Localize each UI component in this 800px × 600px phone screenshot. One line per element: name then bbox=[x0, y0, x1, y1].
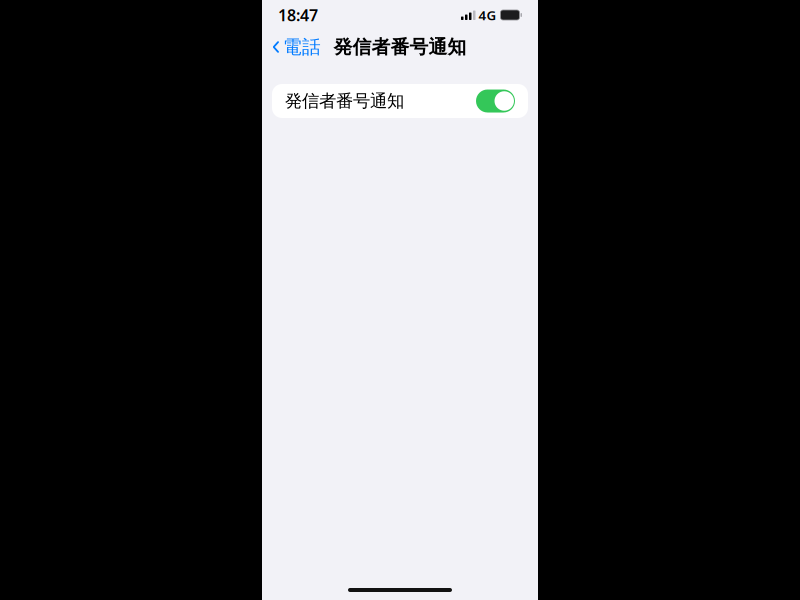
button[interactable]: 電話 bbox=[270, 29, 323, 64]
staticText: 18:47 bbox=[278, 4, 318, 26]
staticText: 発信者番号通知 bbox=[333, 35, 466, 58]
staticText: 発信者番号通知 bbox=[285, 90, 404, 112]
button[interactable]: 発信者番号通知 bbox=[272, 84, 528, 118]
staticText: 電話 bbox=[283, 35, 321, 58]
staticText: 4G bbox=[478, 6, 496, 24]
